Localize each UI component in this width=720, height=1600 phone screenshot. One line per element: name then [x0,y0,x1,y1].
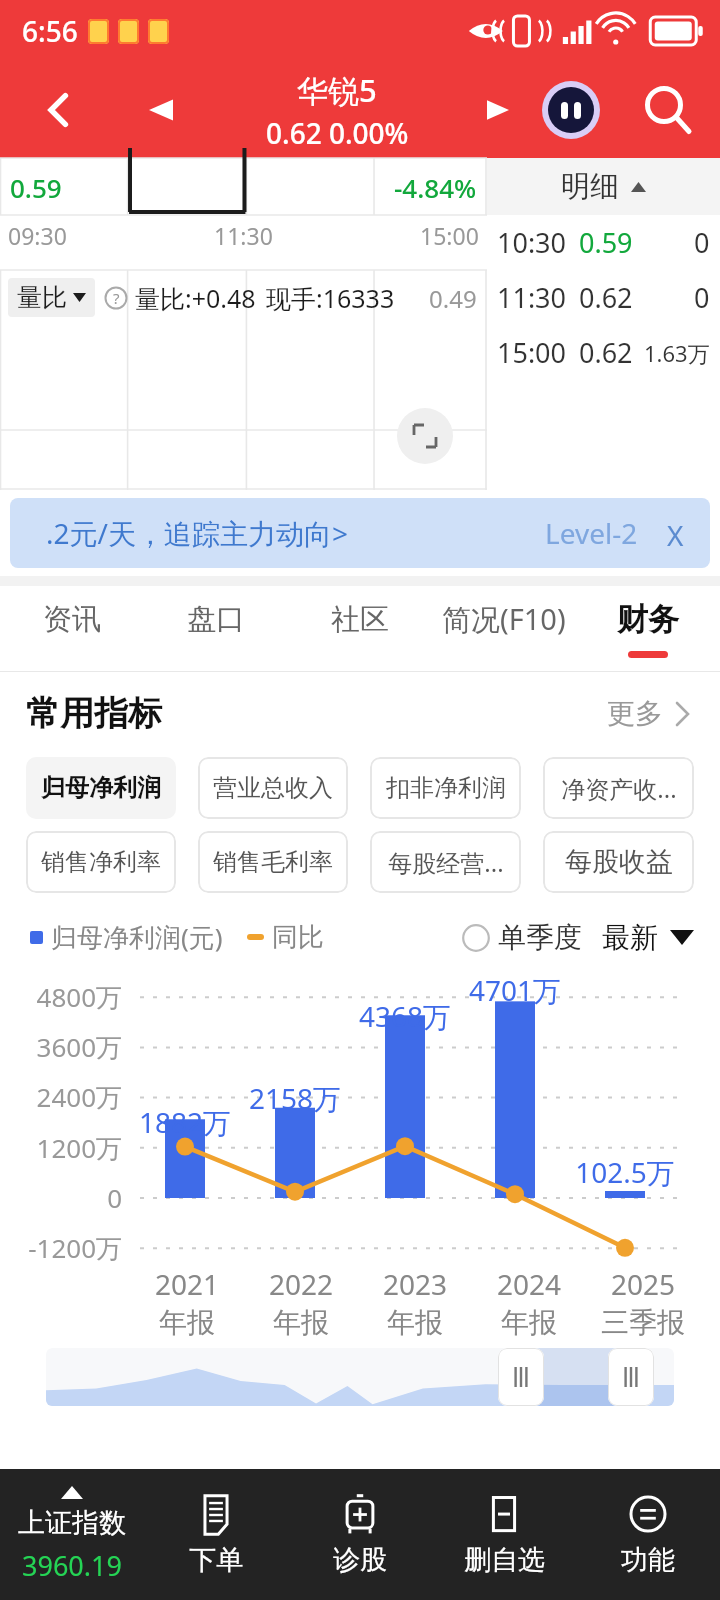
button[interactable]: 量比 [8,278,95,317]
staticText: 华锐5 [297,69,377,111]
staticText: 1.63万 [644,338,710,368]
button[interactable]: 功能 [576,1469,720,1600]
staticText: 0.62 0.00% [266,114,409,152]
button[interactable]: 扣非净利润 [370,757,521,819]
staticText: X [667,516,684,550]
staticText: 2025 [611,1265,676,1303]
staticText: 社区 [331,601,389,638]
staticText: 删自选 [464,1543,545,1577]
button[interactable]: 销售毛利率 [198,831,348,893]
button[interactable]: Fullscreen chart [397,408,453,464]
button[interactable]: 财务 [576,586,720,671]
staticText: 3960.19 [22,1547,122,1584]
button[interactable]: Search [616,62,720,158]
staticText: 4701万 [455,971,575,1009]
staticText: 更多 [607,696,663,731]
staticText: 2023 [383,1265,448,1303]
staticText: 功能 [621,1543,675,1577]
button[interactable]: .2元/天，追踪主力动向> [10,498,710,568]
button[interactable]: Previous stock [118,62,204,158]
staticText: 盘口 [187,601,245,638]
button[interactable]: Range start [498,1348,544,1406]
staticText: 归母净利润(元) [51,919,223,955]
button[interactable]: 简况(F10) [432,586,576,671]
button[interactable]: 资讯 [0,586,144,671]
staticText: 1200万 [0,1130,122,1166]
staticText: 诊股 [333,1543,387,1577]
staticText: 2024 [497,1265,562,1303]
staticText: 2158万 [235,1079,355,1117]
staticText: 4368万 [345,997,465,1035]
button[interactable]: 明细 [487,158,720,215]
staticText: 0.49 [429,282,477,315]
button[interactable]: 10:30 [497,215,710,270]
staticText: 同比 [272,921,324,954]
staticText: 明细 [561,168,619,205]
staticText: 下单 [189,1543,243,1577]
staticText: 0 [694,279,710,316]
button[interactable]: AI Assistant [526,62,616,158]
staticText: 0.62 [579,334,633,371]
staticText: 三季报 [601,1305,685,1340]
button[interactable]: 最新 [602,920,694,955]
button[interactable]: 营业总收入 [198,757,348,819]
button[interactable]: 归母净利润 [26,757,176,819]
button[interactable]: 单季度 [462,920,582,955]
button[interactable]: 11:30 [497,270,710,325]
button[interactable]: Help [104,286,128,310]
staticText: 现手:16333 [266,281,395,315]
button[interactable]: 诊股 [288,1469,432,1600]
staticText: 3600万 [0,1029,122,1065]
button[interactable]: 社区 [288,586,432,671]
button[interactable]: 更多 [603,692,694,735]
staticText: ? [113,288,120,308]
staticText: 资讯 [43,601,101,638]
button[interactable]: Back [0,62,118,158]
staticText: 4800万 [0,979,122,1015]
staticText: 2022 [269,1265,334,1303]
staticText: 0.59 [579,224,633,261]
staticText: 年报 [159,1305,215,1340]
button[interactable]: 下单 [144,1469,288,1600]
staticText: 扣非净利润 [386,773,506,803]
staticText: 单季度 [498,920,582,955]
staticText: 简况(F10) [442,599,566,639]
staticText: 15:00 [420,220,479,251]
button[interactable]: Close banner [658,516,692,550]
button[interactable]: 15:00 [497,325,710,380]
staticText: 每股收益 [565,845,673,879]
staticText: -1200万 [0,1230,122,1261]
staticText: 销售毛利率 [213,847,333,877]
button[interactable]: 销售净利率 [26,831,176,893]
staticText: 2400万 [0,1079,122,1115]
staticText: 年报 [273,1305,329,1340]
staticText: 102.5万 [565,1153,685,1191]
button[interactable]: 每股经营... [370,831,521,893]
staticText: 量比 [17,282,67,313]
staticText: -4.84% [394,170,477,205]
staticText: 上证指数 [18,1506,126,1540]
staticText: 最新 [602,920,658,955]
button[interactable]: Range end [608,1348,654,1406]
staticText: 销售净利率 [41,847,161,877]
button[interactable]: 上证指数 [0,1469,144,1600]
staticText: 09:30 [8,220,67,251]
staticText: 2021 [155,1265,220,1303]
button[interactable]: 删自选 [432,1469,576,1600]
staticText: 财务 [617,600,679,639]
staticText: Level-2 [545,514,638,552]
staticText: 0 [0,1180,122,1215]
staticText: 6:56 [22,12,78,50]
staticText: 0.62 [579,279,633,316]
staticText: 量比:+0.48 [135,281,256,315]
button[interactable]: Next stock [470,62,526,158]
staticText: 0 [694,224,710,261]
staticText: .2元/天，追踪主力动向> [46,514,348,552]
staticText: 归母净利润 [41,773,161,803]
button[interactable]: 净资产收... [543,757,694,819]
staticText: 营业总收入 [213,773,333,803]
button[interactable]: 盘口 [144,586,288,671]
staticText: 常用指标 [26,692,162,735]
button[interactable]: 每股收益 [543,831,694,893]
staticText: 10:30 [497,224,567,261]
